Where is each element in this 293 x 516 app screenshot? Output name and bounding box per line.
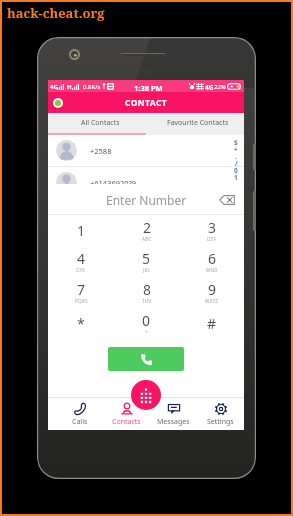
button[interactable] — [48, 231, 244, 262]
staticText: H — [67, 83, 72, 91]
button[interactable]: App icon — [55, 100, 61, 106]
button[interactable]: # — [179, 308, 244, 339]
staticText: + — [145, 329, 148, 335]
staticText: 4G — [205, 83, 214, 92]
staticText: +61436920?9 — [90, 178, 137, 188]
button[interactable]: 6 — [179, 246, 244, 277]
staticText: 9 — [208, 280, 217, 299]
staticText: 7 — [77, 280, 86, 299]
staticText: JKL — [143, 267, 151, 273]
staticText: Contacts — [112, 417, 141, 427]
button[interactable]: 1 — [48, 215, 114, 246]
button[interactable]: Settings — [197, 398, 244, 430]
staticText: TUV — [142, 298, 152, 304]
staticText: WXYZ — [205, 298, 219, 304]
staticText: +2588 — [90, 146, 112, 156]
staticText: Settings — [207, 417, 234, 427]
staticText: 0.8K/s — [83, 83, 101, 91]
staticText: 3 — [208, 218, 217, 237]
button[interactable]: +2588 — [48, 135, 244, 166]
button[interactable]: 5 — [114, 246, 179, 277]
button[interactable]: Calls — [56, 398, 103, 430]
staticText: PQRS — [75, 298, 88, 304]
staticText: DEF — [207, 236, 217, 242]
button[interactable]: 7 — [48, 277, 114, 308]
button[interactable]: All Contacts — [48, 113, 146, 133]
staticText: Messages — [157, 417, 190, 427]
staticText: 22% — [214, 83, 226, 91]
staticText: 1 — [77, 221, 86, 240]
staticText: Favourite Contacts — [167, 118, 229, 128]
staticText: 5 — [142, 249, 151, 268]
staticText: ABC — [142, 236, 152, 242]
staticText: 1 — [234, 173, 238, 180]
staticText: / — [235, 159, 238, 166]
staticText: * — [77, 314, 85, 333]
button[interactable]: 0 — [114, 308, 179, 339]
button[interactable]: Favourite Contacts — [146, 113, 244, 133]
button[interactable]: 3 — [179, 215, 244, 246]
button[interactable]: +61436920?9 — [48, 167, 244, 198]
staticText: MNO — [206, 267, 218, 273]
button[interactable] — [48, 199, 244, 230]
staticText: All Contacts — [81, 118, 120, 128]
button[interactable]: Contacts — [103, 398, 150, 430]
staticText: 4G — [50, 83, 58, 91]
button[interactable]: 9 — [179, 277, 244, 308]
staticText: $ — [234, 138, 238, 145]
button[interactable]: Backspace — [219, 195, 236, 205]
button[interactable]: * — [48, 308, 114, 339]
staticText: # — [207, 314, 217, 333]
staticText: 6 — [208, 249, 217, 268]
staticText: CONTACT — [125, 97, 168, 109]
staticText: hack-cheat.org — [7, 4, 105, 22]
staticText: 0 — [142, 311, 151, 330]
button[interactable]: Call — [108, 347, 184, 371]
staticText: 4 — [77, 249, 86, 268]
staticText: Calls — [72, 417, 88, 427]
staticText: 8 — [143, 280, 152, 299]
button[interactable]: 8 — [114, 277, 179, 308]
button[interactable]: Messages — [150, 398, 197, 430]
button[interactable]: Dialpad — [131, 380, 161, 410]
staticText: 1:38 PM — [134, 83, 163, 93]
staticText: 2 — [143, 218, 152, 237]
button[interactable]: 4 — [48, 246, 114, 277]
staticText: GHI — [76, 267, 86, 273]
button[interactable]: 2 — [114, 215, 179, 246]
staticText: + — [234, 145, 238, 152]
staticText: . — [235, 152, 237, 159]
staticText: 0 — [234, 166, 238, 173]
staticText: Enter Number — [106, 192, 187, 208]
